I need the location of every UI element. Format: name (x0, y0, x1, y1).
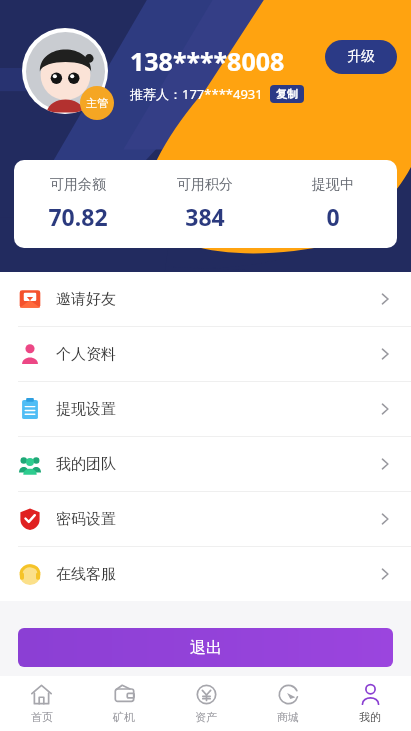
button[interactable]: 可用积分 (141, 176, 269, 232)
button[interactable]: Avatar (22, 28, 108, 114)
button[interactable]: 可用余额 (14, 176, 141, 232)
staticText: 主管 (86, 96, 108, 110)
staticText: 0 (326, 201, 340, 232)
button[interactable]: 首页 (0, 676, 83, 731)
staticText: 提现中 (312, 176, 354, 194)
button[interactable]: 商城 (247, 676, 329, 731)
staticText: 我的团队 (56, 455, 116, 474)
staticText: 矿机 (113, 710, 135, 724)
staticText: 商城 (277, 710, 299, 724)
staticText: 70.82 (48, 201, 108, 232)
button[interactable]: 邀请好友 (0, 272, 411, 326)
staticText: 升级 (347, 48, 375, 66)
staticText: 退出 (190, 638, 222, 658)
staticText: 在线客服 (56, 565, 116, 584)
staticText: 可用余额 (50, 176, 106, 194)
button[interactable]: 矿机 (83, 676, 165, 731)
staticText: 可用积分 (177, 176, 233, 194)
staticText: 提现设置 (56, 400, 116, 419)
staticText: 资产 (195, 710, 217, 724)
button[interactable]: 密码设置 (0, 491, 411, 546)
staticText: 复制 (276, 87, 298, 101)
staticText: 邀请好友 (56, 290, 116, 309)
staticText: 384 (185, 201, 225, 232)
button[interactable]: 提现中 (269, 176, 397, 232)
staticText: 首页 (31, 710, 53, 724)
staticText: 个人资料 (56, 345, 116, 364)
button[interactable]: 我的团队 (0, 436, 411, 491)
button[interactable]: 退出 (18, 628, 393, 667)
staticText: 我的 (359, 710, 381, 724)
staticText: 密码设置 (56, 510, 116, 529)
button[interactable]: 复制 (270, 85, 304, 103)
button[interactable]: 在线客服 (0, 546, 411, 601)
staticText: 138****8008 (130, 44, 285, 78)
staticText: 推荐人：177****4931 (130, 85, 263, 103)
button[interactable]: 提现设置 (0, 381, 411, 436)
button[interactable]: 我的 (329, 676, 411, 731)
button[interactable]: 升级 (325, 40, 397, 74)
button[interactable]: 资产 (165, 676, 247, 731)
button[interactable]: 个人资料 (0, 326, 411, 381)
